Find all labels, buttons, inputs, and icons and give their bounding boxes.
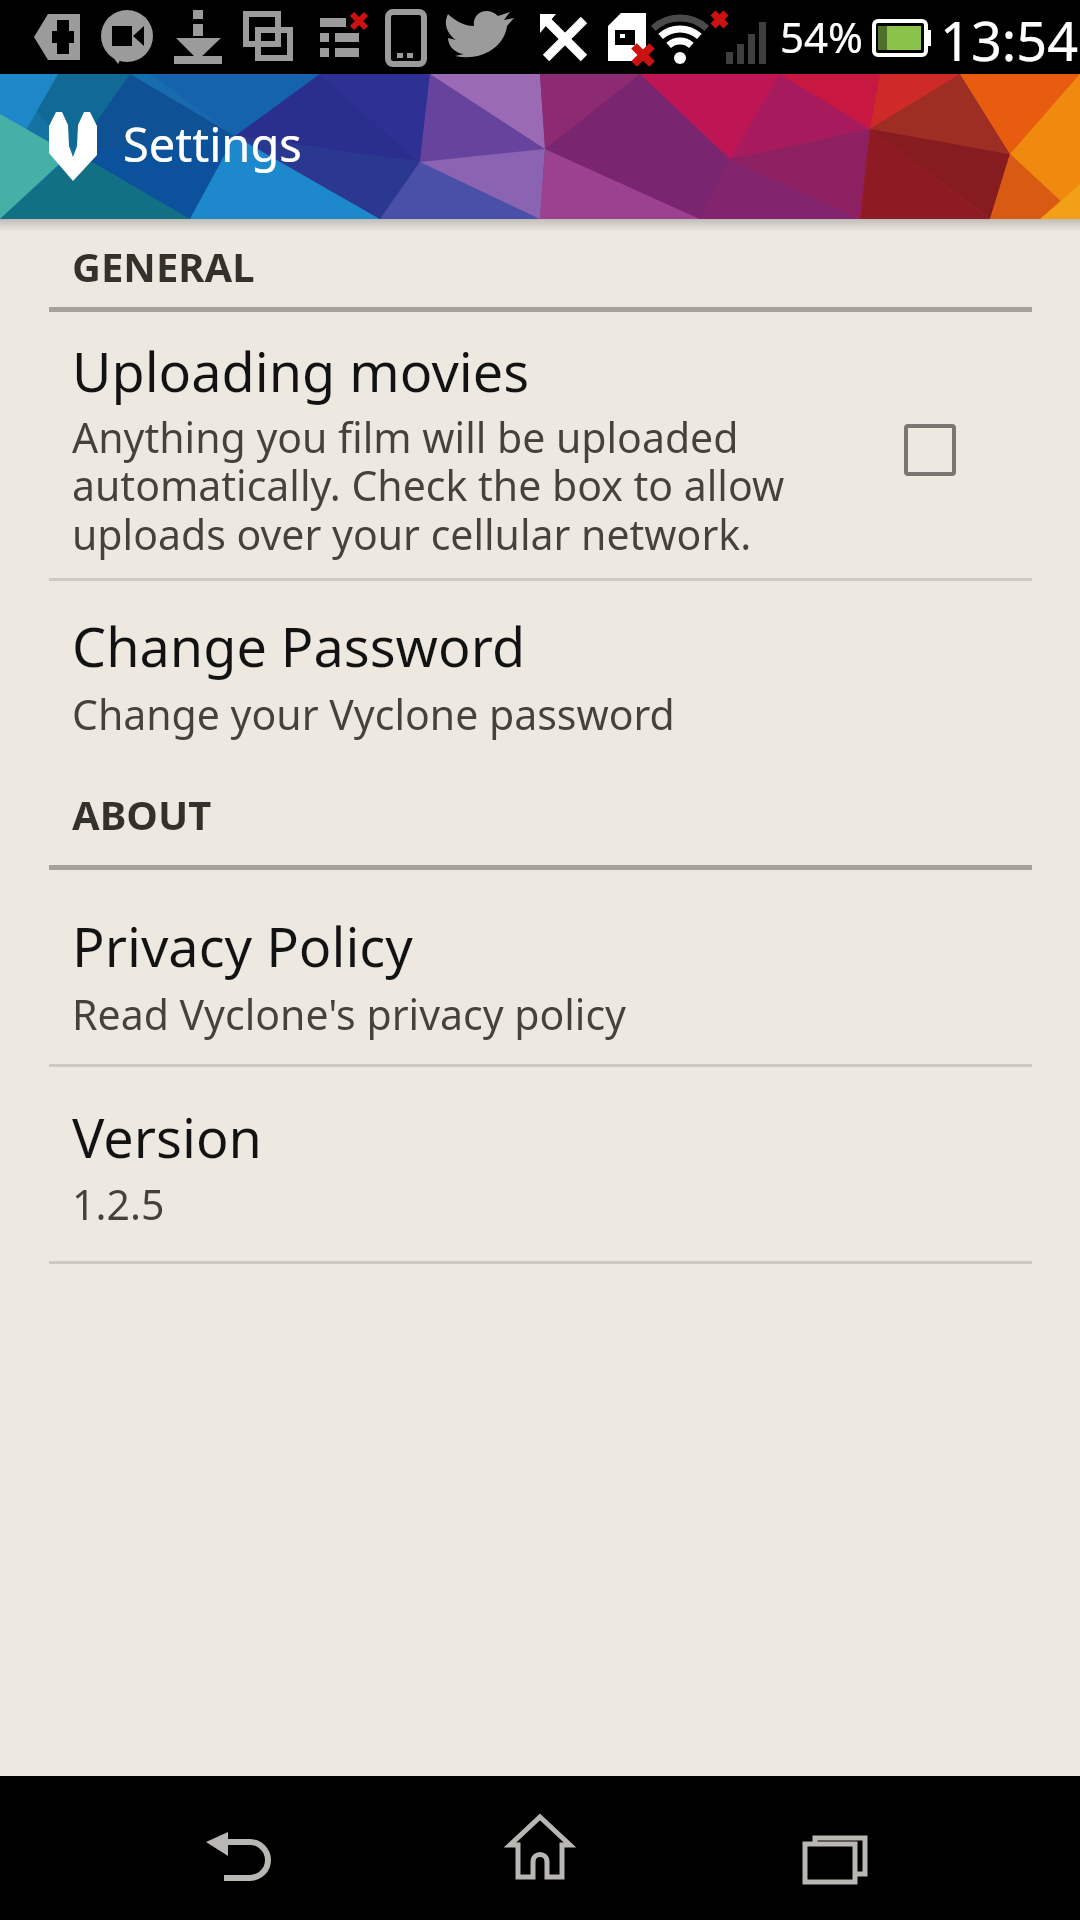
button[interactable] [170,1776,310,1920]
staticText: Uploading movies [72,334,530,408]
staticText: 13:54 [940,3,1079,77]
staticText: Change your Vyclone password [72,686,675,742]
button[interactable]: Privacy Policy [0,868,1080,1064]
button[interactable]: Change Password [0,581,1080,781]
button[interactable] [765,1776,905,1920]
staticText: ABOUT [72,787,212,841]
staticText: Version [72,1100,262,1174]
button[interactable]: Uploading movies [0,313,1080,578]
staticText: Read Vyclone's privacy policy [72,986,626,1042]
staticText: 54% [780,8,863,65]
staticText: 1.2.5 [72,1176,165,1232]
staticText: Settings [123,112,302,176]
button[interactable] [906,426,954,474]
staticText: GENERAL [72,239,255,293]
button[interactable] [470,1776,610,1920]
staticText: Privacy Policy [72,909,413,983]
staticText: Anything you film will be uploaded autom… [72,409,785,562]
staticText: Change Password [72,609,526,683]
button[interactable]: Version [0,1067,1080,1261]
